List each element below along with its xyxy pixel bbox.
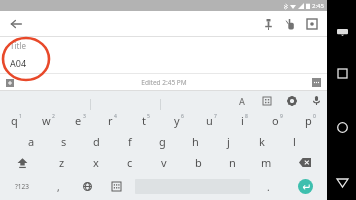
button[interactable]: .: [254, 173, 283, 200]
button[interactable]: h: [179, 131, 212, 152]
button[interactable]: ?123: [0, 173, 44, 200]
staticText: ,: [57, 180, 60, 194]
button[interactable]: j: [212, 131, 245, 152]
staticText: 3: [83, 113, 86, 120]
button[interactable]: s: [47, 131, 80, 152]
staticText: e: [75, 113, 82, 128]
staticText: o: [272, 113, 279, 128]
button[interactable]: Add: [3, 76, 16, 89]
staticText: w: [42, 113, 51, 128]
staticText: A04: [10, 57, 27, 69]
button[interactable]: r: [96, 110, 129, 131]
button[interactable]: o: [261, 110, 294, 131]
button[interactable]: p: [294, 110, 327, 131]
staticText: a: [28, 134, 35, 149]
button[interactable]: m: [249, 152, 283, 173]
staticText: 1: [19, 113, 22, 120]
staticText: z: [59, 155, 65, 170]
button[interactable]: w: [32, 110, 64, 131]
button[interactable]: c: [113, 152, 147, 173]
button[interactable]: i: [228, 110, 261, 131]
staticText: t: [142, 113, 146, 128]
staticText: q: [11, 113, 18, 128]
button[interactable]: l: [278, 131, 311, 152]
staticText: f: [128, 134, 132, 149]
button[interactable]: Settings: [284, 93, 299, 108]
button[interactable]: ,: [44, 173, 73, 200]
button[interactable]: Shift: [0, 152, 45, 173]
button[interactable]: f: [113, 131, 146, 152]
staticText: d: [93, 134, 100, 149]
staticText: j: [227, 134, 230, 149]
button[interactable]: e: [64, 110, 96, 131]
button[interactable]: More options: [310, 76, 323, 89]
staticText: v: [161, 155, 167, 170]
button[interactable]: Switch keyboard: [102, 173, 131, 200]
button[interactable]: g: [146, 131, 179, 152]
staticText: s: [61, 134, 67, 149]
button[interactable]: Back: [331, 172, 353, 194]
staticText: 5: [147, 113, 150, 120]
staticText: n: [229, 155, 236, 170]
staticText: Title: [10, 40, 26, 51]
button[interactable]: Hide keyboard: [332, 22, 352, 42]
button[interactable]: a: [15, 131, 47, 152]
staticText: h: [192, 134, 199, 149]
staticText: 6: [181, 113, 184, 120]
staticText: u: [206, 113, 213, 128]
button[interactable]: n: [215, 152, 249, 173]
button[interactable]: y: [162, 110, 195, 131]
button[interactable]: Backspace: [283, 152, 327, 173]
staticText: Edited 2:45 PM: [141, 78, 187, 87]
button[interactable]: q: [0, 110, 32, 131]
button[interactable]: b: [181, 152, 215, 173]
staticText: m: [261, 155, 272, 170]
staticText: x: [93, 155, 99, 170]
button[interactable]: Reminder: [301, 13, 323, 35]
staticText: ?123: [15, 182, 29, 191]
button[interactable]: k: [245, 131, 278, 152]
button[interactable]: Pin: [257, 13, 279, 35]
staticText: k: [259, 134, 265, 149]
staticText: y: [174, 113, 180, 128]
staticText: 0: [313, 113, 316, 120]
button[interactable]: x: [79, 152, 113, 173]
staticText: 2: [52, 113, 55, 120]
button[interactable]: u: [195, 110, 228, 131]
staticText: p: [305, 113, 312, 128]
button[interactable]: z: [45, 152, 79, 173]
button[interactable]: Recent apps: [331, 62, 353, 84]
staticText: c: [127, 155, 133, 170]
button[interactable]: Back: [6, 14, 26, 34]
staticText: 4: [114, 113, 117, 120]
staticText: l: [293, 134, 296, 149]
staticText: 7: [214, 113, 217, 120]
staticText: 9: [280, 113, 283, 120]
staticText: A: [239, 95, 245, 107]
button[interactable]: Voice input: [309, 93, 324, 108]
button[interactable]: Collaborator: [279, 13, 301, 35]
staticText: b: [195, 155, 202, 170]
button[interactable]: Text formatting: [234, 93, 249, 108]
staticText: r: [108, 113, 113, 128]
button[interactable]: t: [129, 110, 162, 131]
staticText: .: [267, 180, 270, 194]
staticText: 2:45: [312, 2, 324, 10]
staticText: g: [159, 134, 166, 149]
button[interactable]: Enter: [283, 173, 327, 200]
button[interactable]: Home: [331, 116, 353, 138]
staticText: i: [241, 113, 244, 128]
button[interactable]: Stickers: [259, 93, 274, 108]
button[interactable]: v: [147, 152, 181, 173]
staticText: 8: [245, 113, 248, 120]
button[interactable]: d: [80, 131, 113, 152]
button[interactable]: Change language: [73, 173, 102, 200]
